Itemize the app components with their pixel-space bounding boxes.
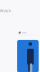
staticText: Watch: [0, 8, 11, 13]
